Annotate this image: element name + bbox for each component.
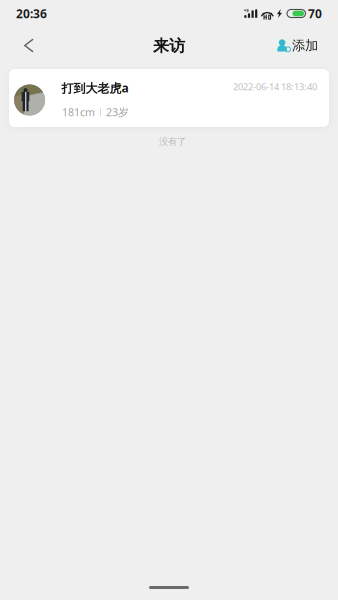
staticText: 2022-06-14 18:13:40	[233, 80, 317, 93]
button[interactable]: 打到大老虎a	[9, 69, 329, 127]
staticText: 181cm	[62, 105, 95, 119]
button[interactable]: 添加	[267, 29, 338, 58]
staticText: 打到大老虎a	[61, 80, 128, 96]
staticText: 来访	[153, 36, 185, 56]
staticText: 20:36	[16, 5, 47, 21]
staticText: 添加	[292, 37, 318, 54]
staticText: 70	[308, 5, 322, 21]
staticText: 23岁	[106, 105, 129, 119]
button[interactable]: Back	[0, 30, 48, 56]
staticText: 没有了	[159, 136, 186, 147]
